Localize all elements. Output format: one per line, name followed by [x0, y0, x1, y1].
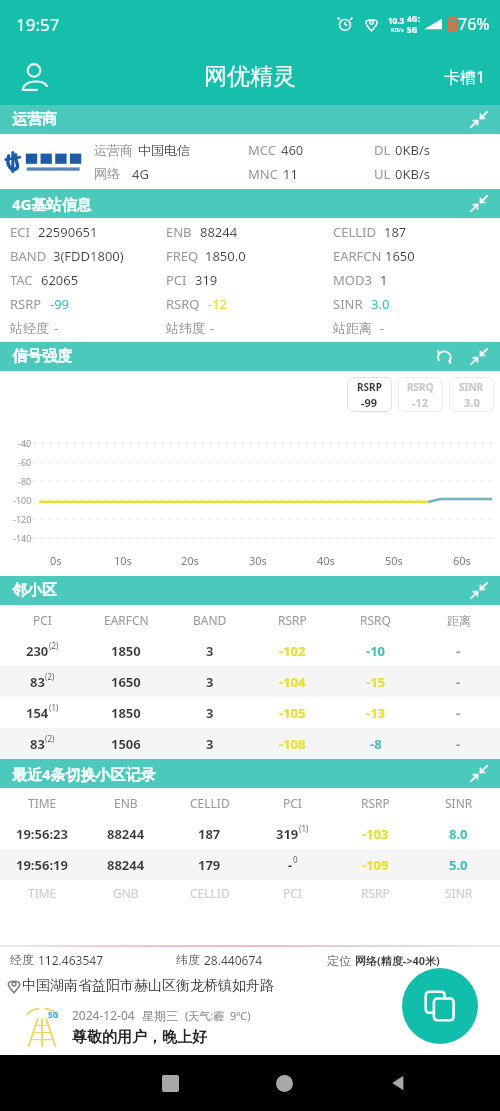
staticText: MOD3	[333, 271, 372, 289]
staticText: 40s	[317, 553, 335, 568]
staticText: 30s	[249, 553, 267, 568]
staticText: -100	[13, 494, 32, 506]
staticText: -	[54, 319, 59, 337]
staticText: 1850	[111, 704, 141, 722]
staticText: PCI	[33, 612, 52, 628]
staticText: TIME	[28, 795, 57, 811]
button[interactable]: Switch metric	[432, 345, 456, 369]
button[interactable]: RSRQ	[398, 377, 443, 412]
button[interactable]: 信号强度	[0, 342, 500, 371]
staticText: RSRQ	[166, 295, 200, 313]
staticText: 319	[195, 271, 218, 289]
button[interactable]: Copy report	[402, 968, 478, 1044]
button[interactable]: Account	[12, 55, 56, 99]
staticText: CELLID	[333, 223, 376, 241]
staticText: MNC	[248, 165, 278, 183]
staticText: RSRP	[357, 380, 382, 394]
staticText: 83	[30, 673, 45, 691]
staticText: -	[456, 704, 461, 722]
staticText: 154	[26, 704, 49, 722]
staticText: ECI	[10, 223, 30, 241]
staticText: 83	[30, 735, 45, 753]
staticText: ENB	[114, 795, 138, 811]
button[interactable]: 最近4条切换小区记录	[0, 759, 500, 788]
button[interactable]: 卡槽1	[430, 54, 500, 100]
staticText: GNB	[113, 885, 139, 901]
staticText: RSRP	[278, 612, 307, 628]
staticText: RSRP	[10, 295, 42, 313]
button[interactable]: Collapse section	[466, 761, 492, 787]
staticText: 1650	[385, 247, 415, 265]
button[interactable]: Collapse section	[466, 344, 492, 370]
staticText: 19:56:19	[16, 856, 68, 874]
staticText: 5.0	[449, 856, 468, 874]
staticText: 站距离	[333, 320, 372, 336]
button[interactable]: 运营商	[0, 105, 500, 134]
staticText: -	[380, 319, 385, 337]
staticText: ENB	[166, 223, 192, 241]
staticText: 19:57	[16, 13, 60, 36]
staticText: 5G	[407, 24, 418, 35]
staticText: 纬度	[176, 952, 200, 967]
staticText: 28.440674	[204, 952, 263, 968]
staticText: 最近4条切换小区记录	[12, 764, 156, 784]
staticText: 20s	[181, 553, 199, 568]
staticText: 中国湖南省益阳市赫山区衡龙桥镇如舟路	[22, 977, 274, 995]
staticText: PCI	[166, 271, 187, 289]
staticText: (1)	[299, 823, 309, 834]
button[interactable]: Collapse section	[466, 107, 492, 133]
staticText: SINR	[445, 795, 473, 811]
staticText: -105	[279, 704, 306, 722]
staticText: 230	[26, 642, 49, 660]
staticText: 3.0	[464, 395, 480, 410]
staticText: 运营商	[12, 110, 57, 129]
staticText: BAND	[10, 247, 47, 265]
button[interactable]: 4G基站信息	[0, 189, 500, 218]
button[interactable]: Collapse section	[466, 578, 492, 604]
staticText: -60	[18, 456, 32, 468]
staticText: 460	[281, 141, 304, 159]
staticText: 8.0	[449, 825, 468, 843]
staticText: -	[210, 319, 215, 337]
staticText: CELLID	[190, 885, 230, 901]
staticText: 距离	[447, 613, 471, 628]
staticText: 3	[206, 642, 214, 660]
staticText: (1)	[49, 702, 59, 713]
staticText: (2)	[45, 733, 55, 744]
button[interactable]: SINR	[449, 377, 494, 412]
staticText: -102	[279, 642, 306, 660]
button[interactable]: Recents	[113, 1055, 227, 1111]
staticText: 50s	[385, 553, 403, 568]
staticText: -10	[366, 642, 386, 660]
staticText: SINR	[333, 295, 363, 313]
button[interactable]: 邻小区	[0, 576, 500, 605]
button[interactable]: Home	[227, 1055, 341, 1111]
staticText: -99	[50, 295, 70, 313]
staticText: -80	[18, 475, 32, 487]
staticText: -12	[412, 395, 429, 410]
button[interactable]: RSRP	[347, 377, 392, 412]
staticText: -	[456, 735, 461, 753]
staticText: MCC	[248, 141, 276, 159]
staticText: DL	[374, 141, 391, 159]
staticText: -120	[13, 513, 32, 525]
staticText: :	[418, 13, 421, 24]
staticText: EARFCN	[333, 247, 382, 265]
staticText: 19:56:23	[16, 825, 68, 843]
staticText: -104	[279, 673, 306, 691]
staticText: -	[288, 856, 293, 874]
staticText: 定位	[327, 953, 351, 968]
staticText: (2)	[49, 640, 59, 651]
button[interactable]: Back	[341, 1055, 455, 1111]
staticText: -99	[361, 395, 378, 410]
button[interactable]: Collapse section	[466, 191, 492, 217]
staticText: RSRP	[361, 885, 390, 901]
staticText: 4G	[132, 165, 149, 183]
staticText: EARFCN	[104, 612, 149, 628]
staticText: 经度	[10, 952, 34, 967]
staticText: 0KB/s	[395, 141, 430, 159]
staticText: 1650	[111, 673, 141, 691]
staticText: 网络	[94, 165, 120, 181]
staticText: 1506	[111, 735, 141, 753]
staticText: 星期三	[142, 1008, 178, 1023]
